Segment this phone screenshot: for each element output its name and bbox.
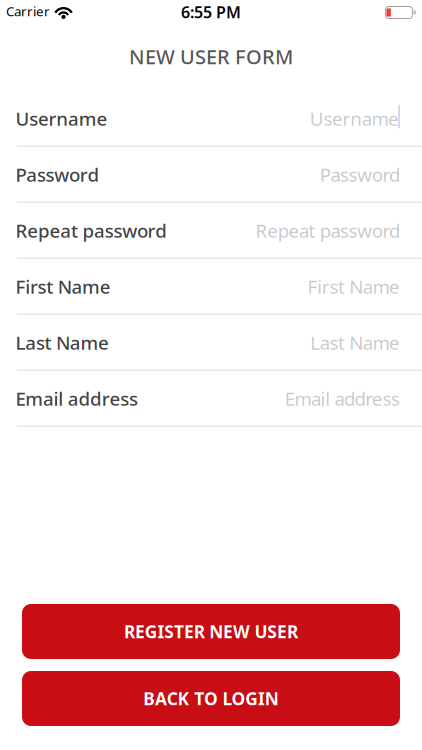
staticText: Repeat password — [15, 218, 167, 243]
staticText: NEW USER FORM — [129, 43, 293, 70]
staticText: REGISTER NEW USER — [124, 620, 298, 643]
staticText: Username — [310, 106, 399, 131]
staticText: Email address — [285, 386, 400, 411]
staticText: BACK TO LOGIN — [143, 687, 279, 710]
staticText: 6:55 PM — [181, 1, 241, 23]
staticText: Password — [15, 162, 99, 187]
staticText: Password — [320, 162, 400, 187]
button[interactable]: Last Name text field — [0, 318, 422, 371]
button[interactable]: Email address text field — [0, 374, 422, 427]
button[interactable]: First Name text field — [0, 262, 422, 315]
staticText: First Name — [308, 274, 400, 299]
button[interactable]: REGISTER NEW USER — [22, 604, 400, 659]
staticText: Last Name — [15, 330, 109, 355]
button[interactable]: Repeat password text field — [0, 206, 422, 259]
button[interactable]: Username text field — [0, 94, 422, 147]
staticText: Email address — [15, 386, 138, 411]
staticText: Repeat password — [256, 218, 400, 243]
staticText: Username — [15, 106, 107, 131]
staticText: Carrier — [6, 2, 50, 20]
staticText: Last Name — [310, 330, 400, 355]
staticText: First Name — [15, 274, 111, 299]
button[interactable]: Password text field — [0, 150, 422, 203]
button[interactable]: BACK TO LOGIN — [22, 671, 400, 726]
